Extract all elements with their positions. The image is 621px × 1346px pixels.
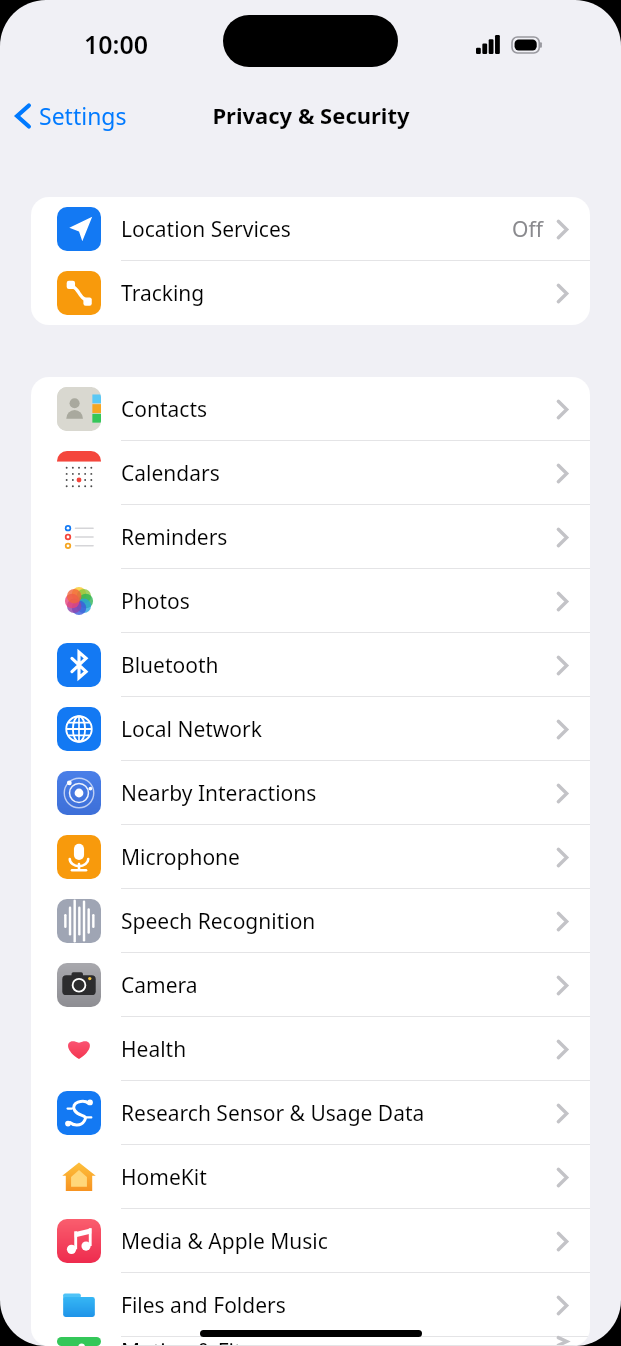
staticText: Calendars — [121, 459, 557, 488]
staticText: Nearby Interactions — [121, 779, 557, 808]
button[interactable]: Files and Folders — [31, 1273, 590, 1337]
button[interactable]: Bluetooth — [31, 633, 590, 697]
button[interactable]: Microphone — [31, 825, 590, 889]
button[interactable]: HomeKit — [31, 1145, 590, 1209]
button[interactable]: Photos — [31, 569, 590, 633]
staticText: Local Network — [121, 715, 557, 744]
button[interactable]: Settings — [0, 96, 137, 135]
button[interactable]: Camera — [31, 953, 590, 1017]
button[interactable]: Calendars — [31, 441, 590, 505]
staticText: Files and Folders — [121, 1291, 557, 1320]
button[interactable]: Media & Apple Music — [31, 1209, 590, 1273]
button[interactable]: Local Network — [31, 697, 590, 761]
staticText: Camera — [121, 971, 557, 1000]
staticText: Media & Apple Music — [121, 1227, 557, 1256]
staticText: 10:00 — [84, 27, 149, 61]
staticText: Tracking — [121, 279, 557, 308]
button[interactable]: Nearby Interactions — [31, 761, 590, 825]
staticText: Contacts — [121, 395, 557, 424]
staticText: Settings — [39, 100, 127, 131]
button[interactable]: Motion & Fitness — [31, 1337, 590, 1346]
button[interactable]: Reminders — [31, 505, 590, 569]
staticText: Motion & Fitness — [121, 1337, 557, 1346]
staticText: Speech Recognition — [121, 907, 557, 936]
staticText: Privacy & Security — [212, 100, 410, 130]
staticText: Reminders — [121, 523, 557, 552]
staticText: HomeKit — [121, 1163, 557, 1192]
button[interactable]: Speech Recognition — [31, 889, 590, 953]
staticText: Microphone — [121, 843, 557, 872]
staticText: Health — [121, 1035, 557, 1064]
staticText: Bluetooth — [121, 651, 557, 680]
staticText: Research Sensor & Usage Data — [121, 1099, 557, 1128]
button[interactable]: Location Services — [31, 197, 590, 261]
staticText: Off — [512, 215, 543, 244]
staticText: Location Services — [121, 215, 512, 244]
staticText: Photos — [121, 587, 557, 616]
button[interactable]: Tracking — [31, 261, 590, 325]
button[interactable]: Research Sensor & Usage Data — [31, 1081, 590, 1145]
button[interactable]: Contacts — [31, 377, 590, 441]
button[interactable]: Health — [31, 1017, 590, 1081]
